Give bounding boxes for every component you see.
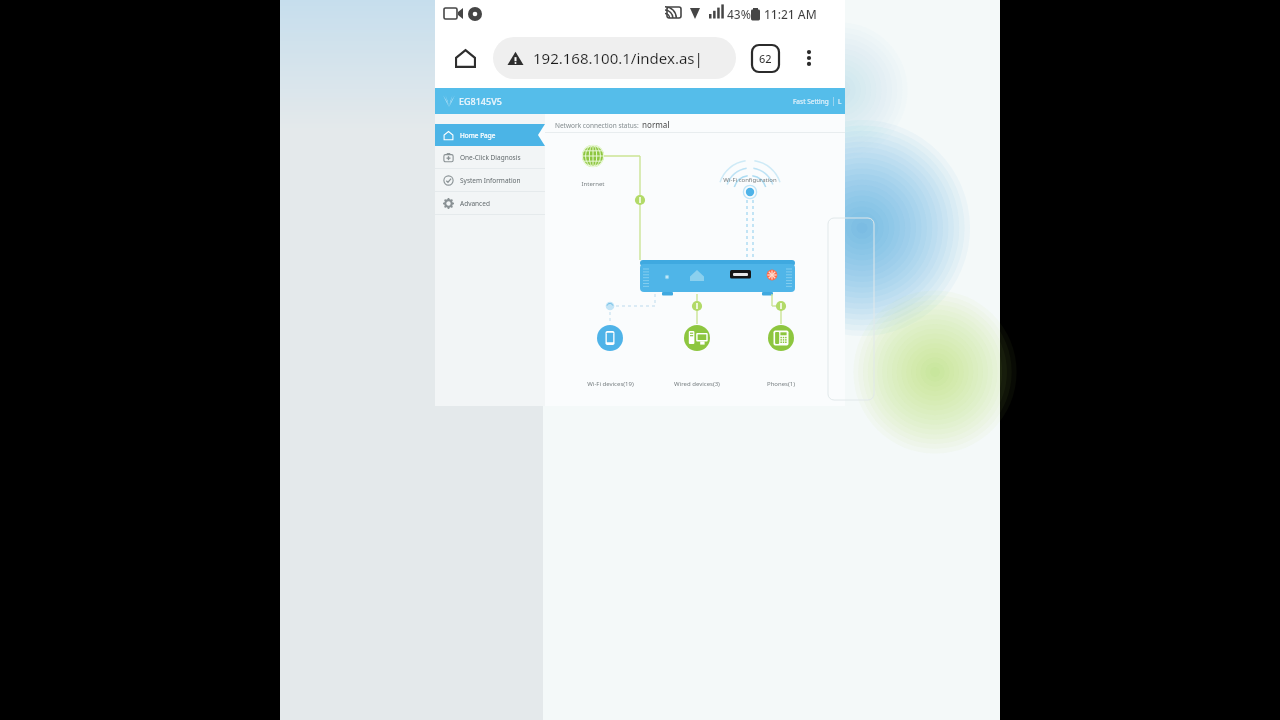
staticText: Phones(1) bbox=[767, 380, 795, 388]
staticText: Internet bbox=[581, 180, 605, 188]
staticText: EG8145V5 bbox=[459, 95, 502, 107]
staticText: 62 bbox=[759, 51, 772, 66]
button[interactable]: Tabs, 62 open bbox=[751, 44, 780, 73]
button[interactable]: One-Click Diagnosis bbox=[435, 146, 545, 168]
button[interactable]: System Information bbox=[435, 169, 545, 191]
button[interactable]: More options bbox=[791, 40, 827, 76]
staticText: Wi-Fi configuration bbox=[723, 176, 777, 184]
button[interactable]: 192.168.100.1/index.as| bbox=[493, 37, 736, 79]
button[interactable]: Fast Setting bbox=[793, 97, 829, 106]
staticText: One-Click Diagnosis bbox=[460, 153, 521, 162]
staticText: Advanced bbox=[460, 199, 490, 208]
staticText: Network connection status: bbox=[555, 121, 639, 130]
button[interactable]: Advanced bbox=[435, 192, 545, 214]
staticText: System Information bbox=[460, 176, 521, 185]
staticText: Wi-Fi devices(19) bbox=[587, 380, 634, 388]
button[interactable]: Home bbox=[447, 40, 483, 76]
staticText: 43% bbox=[727, 6, 751, 22]
staticText: Home Page bbox=[460, 131, 496, 140]
staticText: Wired devices(3) bbox=[674, 380, 720, 388]
button[interactable]: L bbox=[838, 97, 842, 106]
staticText: 11:21 AM bbox=[764, 6, 817, 22]
staticText: normal bbox=[642, 119, 670, 130]
button[interactable]: Home Page bbox=[435, 124, 545, 146]
staticText: 192.168.100.1/index.as| bbox=[533, 48, 703, 68]
